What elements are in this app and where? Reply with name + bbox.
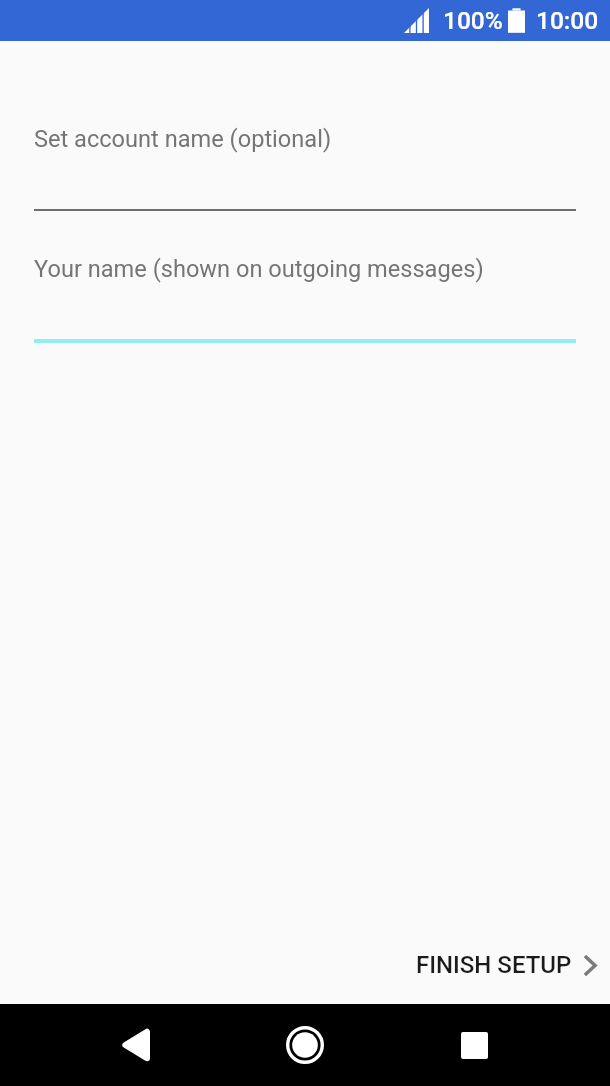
button[interactable]: Back — [102, 1004, 170, 1086]
other: Battery full — [508, 8, 525, 34]
button[interactable]: Recent apps — [440, 1004, 508, 1086]
staticText: 100% — [443, 6, 503, 35]
button[interactable]: Home — [271, 1004, 339, 1086]
other: Mobile signal full — [404, 8, 429, 33]
staticText: Set account name (optional) — [34, 125, 332, 153]
button[interactable]: Your name (shown on outgoing messages) — [34, 239, 576, 343]
button[interactable]: FINISH SETUP — [408, 937, 605, 993]
staticText: Your name (shown on outgoing messages) — [34, 255, 484, 283]
staticText: 10:00 — [536, 6, 599, 35]
button[interactable]: Set account name (optional) — [34, 109, 576, 211]
staticText: FINISH SETUP — [416, 951, 572, 979]
